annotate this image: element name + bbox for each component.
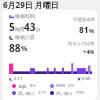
staticText: REM — [56, 83, 65, 89]
staticText: 70% — [76, 90, 85, 96]
staticText: 6月29日 月曜日 — [3, 0, 59, 10]
staticText: 0% — [68, 83, 74, 89]
staticText: 覚醒 — [18, 84, 27, 89]
staticText: 分 — [36, 27, 41, 33]
staticText: 6:00 — [82, 76, 91, 82]
staticText: 8% — [30, 83, 36, 89]
staticText: 43 — [24, 20, 36, 34]
staticText: 睡眠時間 — [15, 13, 35, 19]
button[interactable]: 睡眠時間 — [2, 10, 97, 100]
staticText: % — [21, 44, 28, 54]
staticText: 5 — [9, 20, 15, 34]
staticText: 深い眠り — [56, 91, 73, 96]
staticText: 21% — [38, 90, 47, 96]
staticText: 0:17 — [14, 76, 23, 82]
staticText: % — [89, 27, 95, 35]
staticText: 時間 — [15, 27, 24, 33]
staticText: 81 — [79, 24, 89, 36]
staticText: 88 — [9, 41, 21, 55]
staticText: 目標達成度 — [73, 17, 95, 23]
staticText: 前日との比較 — [68, 41, 95, 47]
staticText: 浅い眠り — [18, 91, 35, 96]
staticText: +4% — [83, 48, 95, 55]
staticText: 睡眠の質 — [15, 34, 36, 40]
